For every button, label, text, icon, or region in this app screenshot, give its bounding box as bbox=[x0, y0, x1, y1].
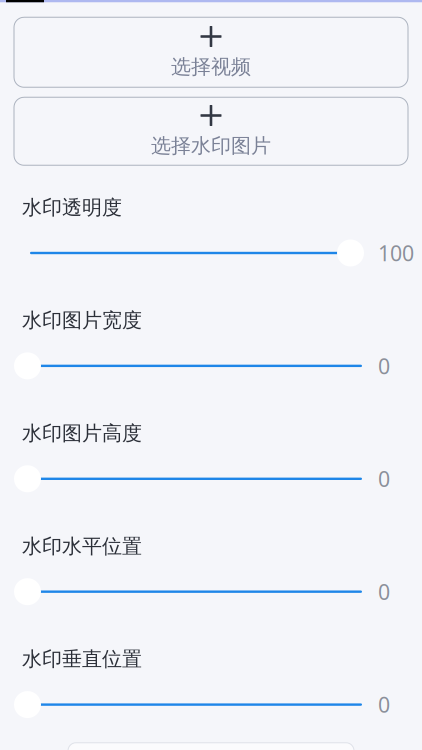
staticText: 水印透明度 bbox=[22, 195, 122, 220]
staticText: 0 bbox=[378, 577, 390, 606]
button[interactable]: 选择视频 bbox=[14, 17, 408, 87]
button[interactable]: 开始添加水印 bbox=[0, 743, 422, 750]
staticText: 0 bbox=[378, 690, 390, 719]
button[interactable]: 选择水印图片 bbox=[14, 97, 408, 165]
staticText: 选择视频 bbox=[171, 54, 251, 79]
staticText: 0 bbox=[378, 465, 390, 493]
staticText: 选择水印图片 bbox=[151, 133, 271, 158]
staticText: 水印图片宽度 bbox=[22, 308, 142, 333]
staticText: 0 bbox=[378, 352, 390, 380]
staticText: 水印图片高度 bbox=[22, 421, 142, 446]
staticText: 水印垂直位置 bbox=[22, 647, 142, 671]
staticText: 100 bbox=[378, 239, 414, 267]
staticText: 水印水平位置 bbox=[22, 534, 142, 558]
